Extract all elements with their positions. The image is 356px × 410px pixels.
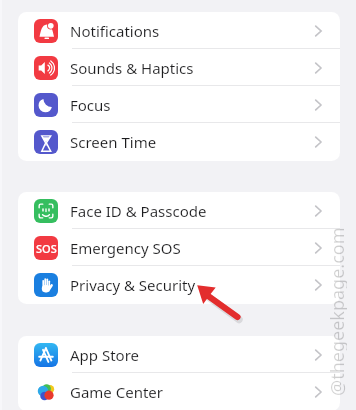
staticText: Focus xyxy=(70,95,111,115)
button[interactable]: SOS xyxy=(18,229,340,266)
button[interactable]: Game Center xyxy=(18,373,340,410)
staticText: @thegeekpage.com xyxy=(325,227,347,396)
other: Open xyxy=(311,98,325,112)
staticText: Screen Time xyxy=(70,132,157,152)
other: Open xyxy=(311,385,325,399)
staticText: SOS xyxy=(36,241,57,256)
other: Open xyxy=(311,204,325,218)
other: Open xyxy=(311,135,325,149)
staticText: Sounds & Haptics xyxy=(70,58,194,78)
other: Open xyxy=(311,24,325,38)
staticText: Notifications xyxy=(70,21,160,41)
other: Open xyxy=(311,241,325,255)
button[interactable]: App Store xyxy=(18,336,340,373)
button[interactable]: Notifications xyxy=(18,12,340,49)
button[interactable]: Focus xyxy=(18,86,340,123)
staticText: App Store xyxy=(70,345,140,365)
button[interactable]: Face ID & Passcode xyxy=(18,192,340,229)
button[interactable]: Privacy & Security xyxy=(18,266,340,303)
other: Open xyxy=(311,278,325,292)
other: Open xyxy=(311,348,325,362)
staticText: Face ID & Passcode xyxy=(70,201,207,221)
staticText: Emergency SOS xyxy=(70,238,181,258)
button[interactable]: Sounds & Haptics xyxy=(18,49,340,86)
button[interactable]: Screen Time xyxy=(18,123,340,160)
other: Open xyxy=(311,61,325,75)
staticText: Privacy & Security xyxy=(70,275,196,295)
staticText: Game Center xyxy=(70,382,164,402)
